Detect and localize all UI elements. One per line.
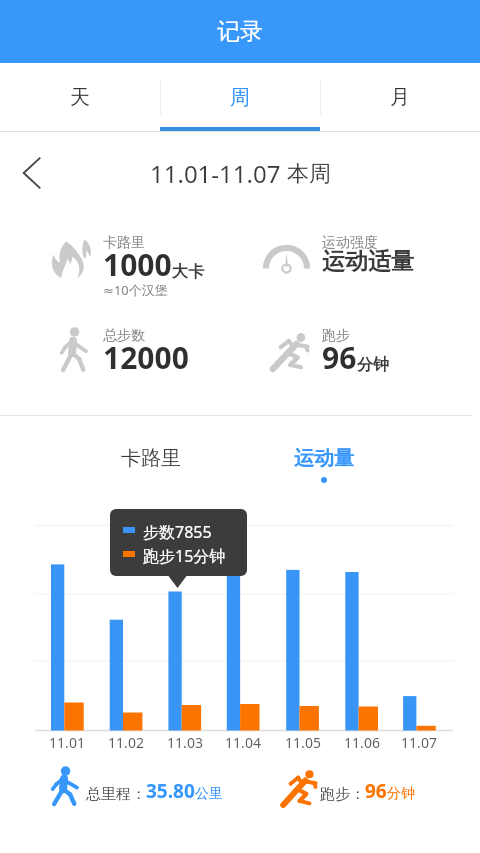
staticText: 11.01-11.07: [150, 157, 287, 190]
staticText: 12000: [103, 337, 189, 378]
staticText: 跑步：: [320, 785, 365, 804]
staticText: 总步数: [103, 327, 145, 345]
staticText: 11.02: [99, 733, 153, 752]
staticText: 运动适量: [322, 247, 414, 276]
button[interactable]: 周: [160, 63, 320, 132]
staticText: 卡路里: [103, 234, 145, 252]
staticText: 步数7855: [143, 521, 212, 543]
staticText: 96: [365, 778, 387, 804]
button[interactable]: 卡路里: [115, 440, 187, 477]
staticText: 11.01: [40, 733, 94, 752]
staticText: 总里程：: [86, 785, 146, 804]
staticText: 运动强度: [322, 234, 378, 252]
button[interactable]: 天: [0, 63, 160, 132]
staticText: 月: [390, 85, 410, 110]
staticText: 11.05: [276, 733, 330, 752]
button[interactable]: Previous week: [8, 149, 56, 197]
staticText: 1000: [103, 244, 172, 285]
staticText: 天: [70, 85, 90, 110]
staticText: 96: [322, 337, 357, 378]
staticText: 跑步: [322, 327, 350, 345]
staticText: 运动量: [294, 446, 354, 471]
staticText: 11.07: [392, 733, 446, 752]
staticText: 分钟: [357, 355, 389, 375]
staticText: 本周: [287, 160, 331, 188]
staticText: ≈10个汉堡: [103, 281, 168, 299]
staticText: 跑步15分钟: [143, 545, 226, 567]
staticText: 35.80: [146, 778, 195, 804]
staticText: 记录: [217, 17, 263, 46]
staticText: 11.03: [158, 733, 212, 752]
staticText: 大卡: [172, 262, 204, 282]
staticText: 分钟: [387, 785, 415, 803]
button[interactable]: 运动量: [288, 440, 360, 489]
staticText: 11.04: [216, 733, 270, 752]
staticText: 卡路里: [121, 446, 181, 471]
staticText: 11.06: [335, 733, 389, 752]
staticText: 周: [230, 85, 250, 110]
staticText: 公里: [195, 785, 223, 803]
button[interactable]: 月: [320, 63, 480, 132]
